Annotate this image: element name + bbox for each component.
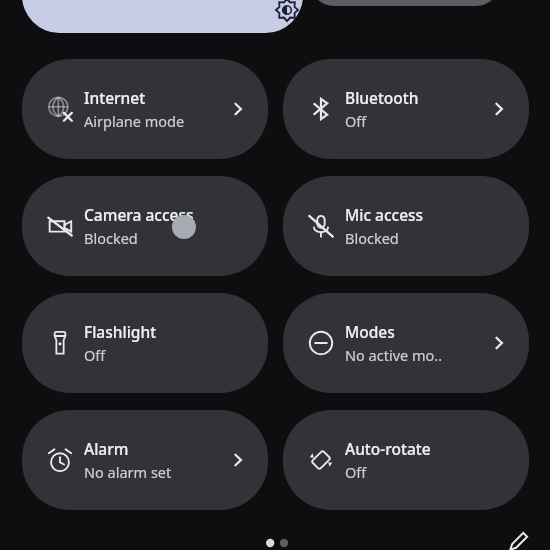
staticText: Bluetooth [345, 87, 419, 108]
button[interactable]: Mic access [283, 176, 529, 276]
button[interactable]: Alarm [22, 410, 268, 510]
staticText: Airplane mode [84, 111, 185, 131]
button[interactable]: Edit tiles [503, 527, 533, 550]
staticText: Internet [84, 87, 146, 108]
staticText: Camera access [84, 204, 194, 225]
staticText: Auto-rotate [345, 438, 431, 459]
staticText: Flashlight [84, 321, 157, 342]
staticText: Blocked [345, 228, 399, 248]
staticText: Modes [345, 321, 395, 342]
staticText: Mic access [345, 204, 424, 225]
staticText: Off [84, 345, 106, 365]
button[interactable]: Bluetooth [283, 59, 529, 159]
button[interactable]: Flashlight [22, 293, 268, 393]
button[interactable]: Auto-rotate [283, 410, 529, 510]
button[interactable]: Internet [22, 59, 268, 159]
staticText: No active mo.. [345, 345, 443, 365]
staticText: Off [345, 462, 367, 482]
button[interactable]: Brightness [22, 0, 303, 33]
staticText: Blocked [84, 228, 138, 248]
button[interactable]: Modes [283, 293, 529, 393]
button[interactable]: Camera access [22, 176, 268, 276]
staticText: Alarm [84, 438, 129, 459]
staticText: Off [345, 111, 367, 131]
staticText: No alarm set [84, 462, 172, 482]
